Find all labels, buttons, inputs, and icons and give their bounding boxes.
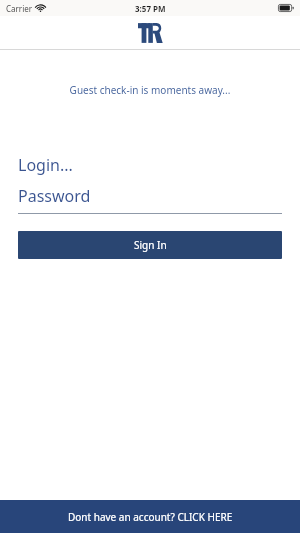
staticText: Dont have an account? CLICK HERE (68, 510, 233, 524)
staticText: Carrier (6, 3, 33, 14)
button[interactable]: Sign In (18, 231, 282, 259)
staticText: Guest check-in is moments away... (0, 83, 300, 97)
button[interactable]: Login... (0, 150, 300, 180)
button[interactable]: Dont have an account? CLICK HERE (0, 500, 300, 533)
other: TR logo (135, 20, 165, 46)
button[interactable]: Password (0, 183, 300, 214)
staticText: 3:57 PM (135, 3, 166, 14)
staticText: Password (18, 185, 91, 207)
staticText: Login... (18, 154, 73, 176)
staticText: Sign In (134, 238, 167, 252)
